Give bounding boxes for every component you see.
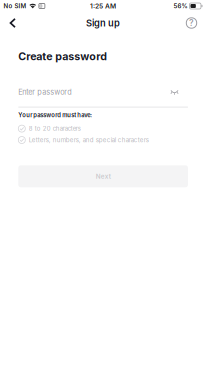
staticText: Next [96,172,111,180]
staticText: ? [189,18,194,28]
button[interactable]: Next [18,165,188,187]
button[interactable]: Help [177,12,197,34]
staticText: 1:25 AM [90,2,116,10]
staticText: 56% [173,2,187,10]
staticText: Letters, numbers, and special characters [29,136,149,144]
staticText: Enter password [18,88,71,97]
button[interactable]: Back [9,12,29,34]
staticText: Your password must have: [18,112,92,119]
staticText: Sign up [86,17,120,29]
staticText: No SIM [3,2,26,10]
staticText: Create password [18,50,107,63]
staticText: 8 to 20 characters [29,125,81,132]
button[interactable]: Show password [164,87,188,97]
